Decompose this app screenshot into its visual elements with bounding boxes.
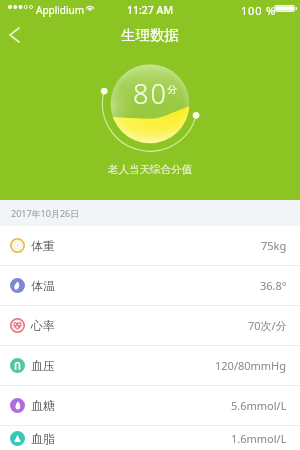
button[interactable]: 心率 (0, 306, 300, 345)
staticText: 血脂 (31, 431, 55, 446)
staticText: 血糖 (31, 398, 55, 413)
staticText: 体温 (31, 278, 55, 293)
staticText: Applidium (36, 3, 85, 17)
staticText: 血压 (31, 358, 55, 373)
staticText: 120/80mmHg (215, 358, 287, 373)
button[interactable]: 血脂 (0, 426, 300, 450)
staticText: 70次/分 (248, 318, 287, 333)
button[interactable]: 体温 (0, 266, 300, 305)
staticText: 分 (167, 83, 177, 96)
staticText: 5.6mmol/L (231, 398, 287, 413)
button[interactable]: Back (0, 21, 28, 49)
staticText: 100 % (241, 3, 276, 18)
staticText: 老人当天综合分值 (108, 163, 192, 176)
button[interactable]: 体重 (0, 226, 300, 265)
staticText: 80 (133, 75, 169, 112)
staticText: 体重 (31, 238, 55, 253)
staticText: 生理数据 (121, 26, 179, 44)
staticText: 75kg (261, 238, 287, 253)
button[interactable]: 血糖 (0, 386, 300, 425)
staticText: 心率 (31, 318, 55, 333)
staticText: 36.8° (260, 278, 287, 293)
button[interactable]: 血压 (0, 346, 300, 385)
staticText: 2017年10月26日 (11, 207, 80, 219)
staticText: 11:27 AM (127, 3, 174, 17)
staticText: 1.6mmol/L (231, 431, 287, 446)
